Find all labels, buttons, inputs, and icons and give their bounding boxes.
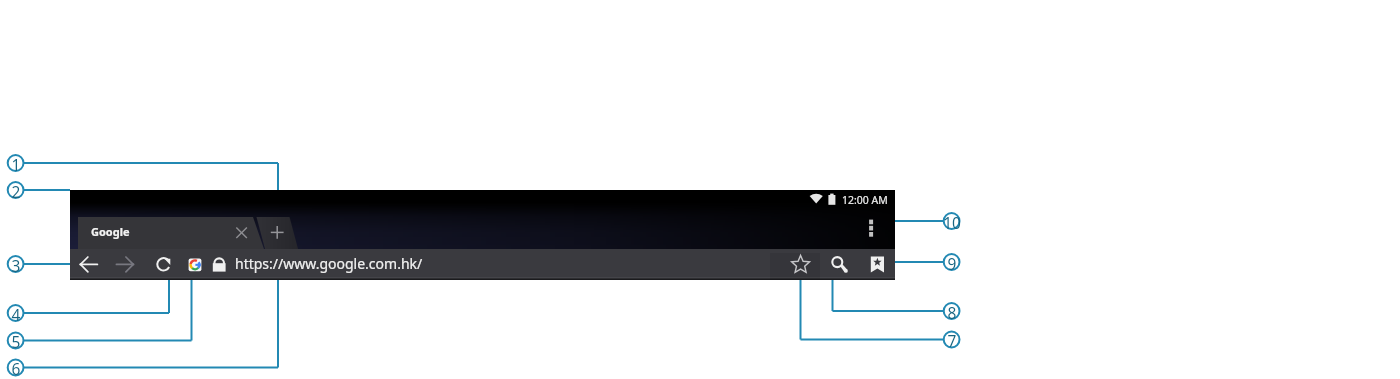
- button[interactable]: Search: [827, 250, 849, 280]
- staticText: 6: [0, 358, 36, 377]
- staticText: 10: [932, 212, 972, 231]
- staticText: Google: [91, 224, 130, 239]
- button[interactable]: Close tab: [233, 217, 257, 249]
- button[interactable]: Bookmark this page: [790, 250, 812, 280]
- staticText: 9: [932, 253, 972, 272]
- button[interactable]: More options: [860, 212, 882, 242]
- button[interactable]: Site info: [186, 250, 204, 280]
- button[interactable]: Forward: [116, 250, 134, 280]
- button[interactable]: Back: [80, 250, 98, 280]
- staticText: 4: [0, 304, 36, 323]
- staticText: 5: [0, 331, 36, 350]
- button[interactable]: Address bar: [232, 250, 662, 280]
- staticText: https://www.google.com.hk/: [235, 254, 423, 273]
- staticText: 12:00 AM: [842, 193, 888, 207]
- button[interactable]: Google tab: [78, 217, 233, 249]
- staticText: 2: [0, 181, 36, 200]
- staticText: 3: [0, 255, 36, 274]
- staticText: 7: [932, 330, 972, 349]
- button[interactable]: New tab: [257, 217, 299, 249]
- staticText: 1: [0, 154, 36, 173]
- staticText: 8: [932, 302, 972, 321]
- button[interactable]: Bookmarks: [866, 250, 888, 280]
- button[interactable]: Reload: [154, 250, 174, 280]
